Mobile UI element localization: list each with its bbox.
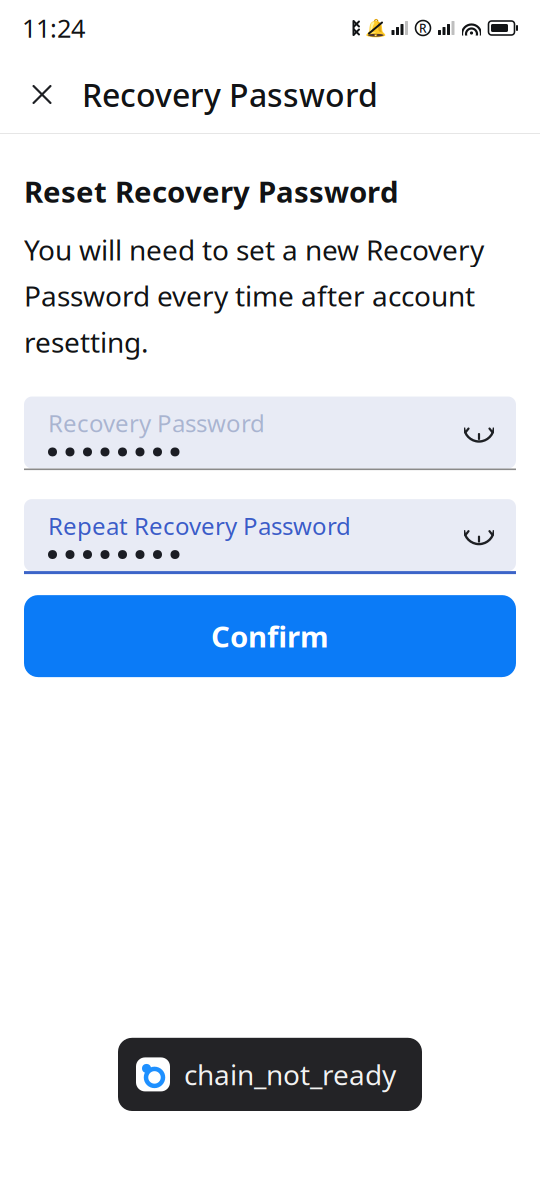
staticText: 11:24: [22, 11, 85, 45]
staticText: Reset Recovery Password: [24, 172, 399, 211]
button[interactable]: Recovery Password: [24, 396, 516, 470]
staticText: Recovery Password: [48, 407, 265, 439]
button[interactable]: Repeat Recovery Password: [24, 499, 516, 574]
staticText: Recovery Password: [82, 73, 378, 116]
staticText: chain_not_ready: [184, 1056, 396, 1093]
staticText: 🔔: [364, 18, 386, 38]
staticText: You will need to set a new Recovery Pass…: [24, 231, 484, 360]
button[interactable]: Confirm: [24, 595, 516, 677]
button[interactable]: Close: [14, 66, 70, 122]
staticText: Confirm: [211, 617, 329, 656]
staticText: Repeat Recovery Password: [48, 510, 351, 542]
staticText: R: [419, 20, 427, 36]
